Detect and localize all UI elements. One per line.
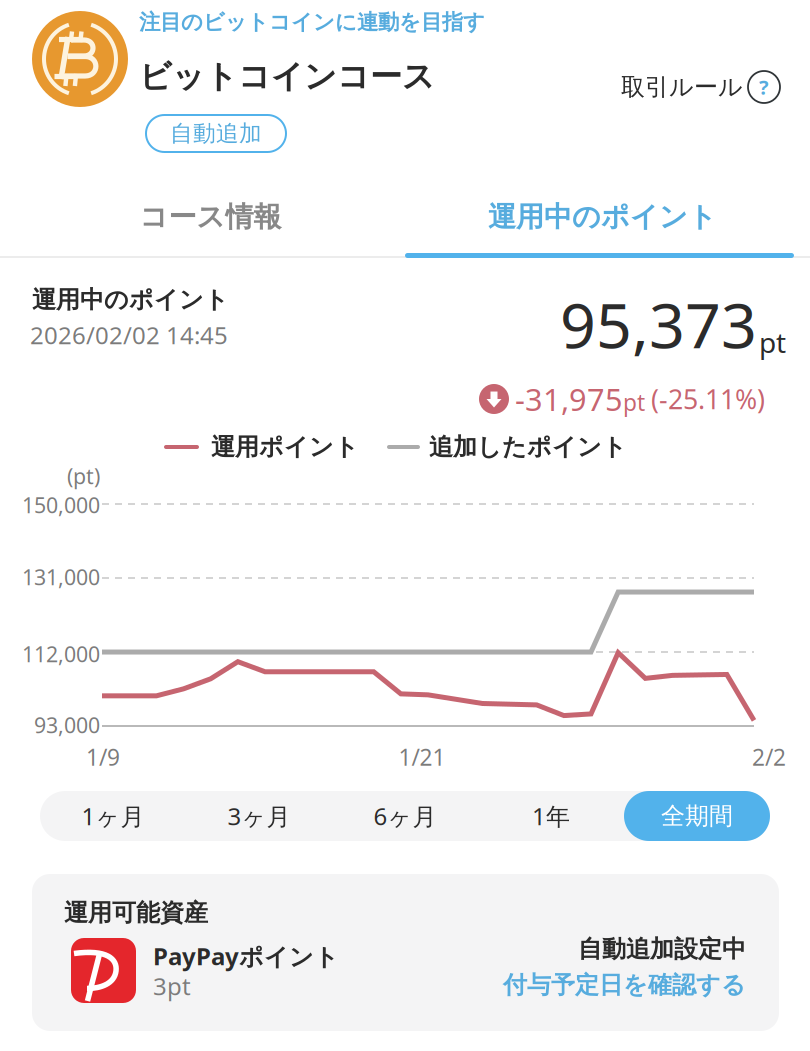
staticText: 150,000	[22, 491, 100, 519]
button[interactable]: 1ヶ月	[40, 791, 186, 841]
button[interactable]: 6ヶ月	[332, 791, 478, 841]
staticText: 全期間	[661, 801, 733, 831]
staticText: 6ヶ月	[373, 800, 436, 832]
staticText: -31,975	[515, 379, 623, 419]
staticText: 運用中のポイント	[32, 285, 229, 314]
staticText: 112,000	[22, 640, 100, 668]
staticText: PayPayポイント	[153, 940, 339, 972]
button[interactable]: コース情報	[8, 181, 413, 253]
staticText: 131,000	[22, 563, 100, 591]
staticText: 1/21	[398, 742, 445, 772]
staticText: コース情報	[139, 200, 281, 234]
staticText: 93,000	[34, 711, 100, 739]
button[interactable]: 3ヶ月	[186, 791, 332, 841]
staticText: 2/2	[752, 742, 786, 772]
button[interactable]: 付与予定日を確認する	[32, 970, 746, 1000]
staticText: 運用可能資産	[64, 898, 208, 927]
button[interactable]: 取引ルール	[621, 71, 780, 103]
staticText: 95,373	[560, 282, 757, 366]
staticText: 取引ルール	[621, 72, 743, 102]
staticText: (-25.11%)	[651, 381, 765, 417]
staticText: 追加したポイント	[429, 432, 627, 462]
staticText: 1年	[532, 800, 570, 832]
staticText: 1/9	[86, 742, 120, 772]
staticText: pt	[623, 387, 645, 417]
staticText: ビットコインコース	[139, 57, 435, 96]
button[interactable]: 自動追加	[146, 115, 286, 152]
staticText: 1ヶ月	[81, 800, 144, 832]
staticText: 2026/02/02 14:45	[30, 319, 228, 351]
button[interactable]: 運用中のポイント	[400, 181, 805, 253]
staticText: 3ヶ月	[227, 800, 290, 832]
staticText: 3pt	[153, 970, 191, 1002]
staticText: (pt)	[67, 462, 100, 490]
staticText: 運用ポイント	[211, 432, 359, 462]
staticText: ?	[759, 74, 769, 100]
button[interactable]: 1年	[478, 791, 624, 841]
staticText: 付与予定日を確認する	[503, 970, 746, 1000]
staticText: 注目のビットコインに連動を目指す	[139, 9, 485, 35]
staticText: 自動追加	[170, 120, 262, 147]
button[interactable]: 全期間	[624, 791, 770, 841]
staticText: pt	[759, 323, 786, 361]
staticText: 自動追加設定中	[578, 934, 746, 964]
staticText: 運用中のポイント	[488, 200, 717, 234]
